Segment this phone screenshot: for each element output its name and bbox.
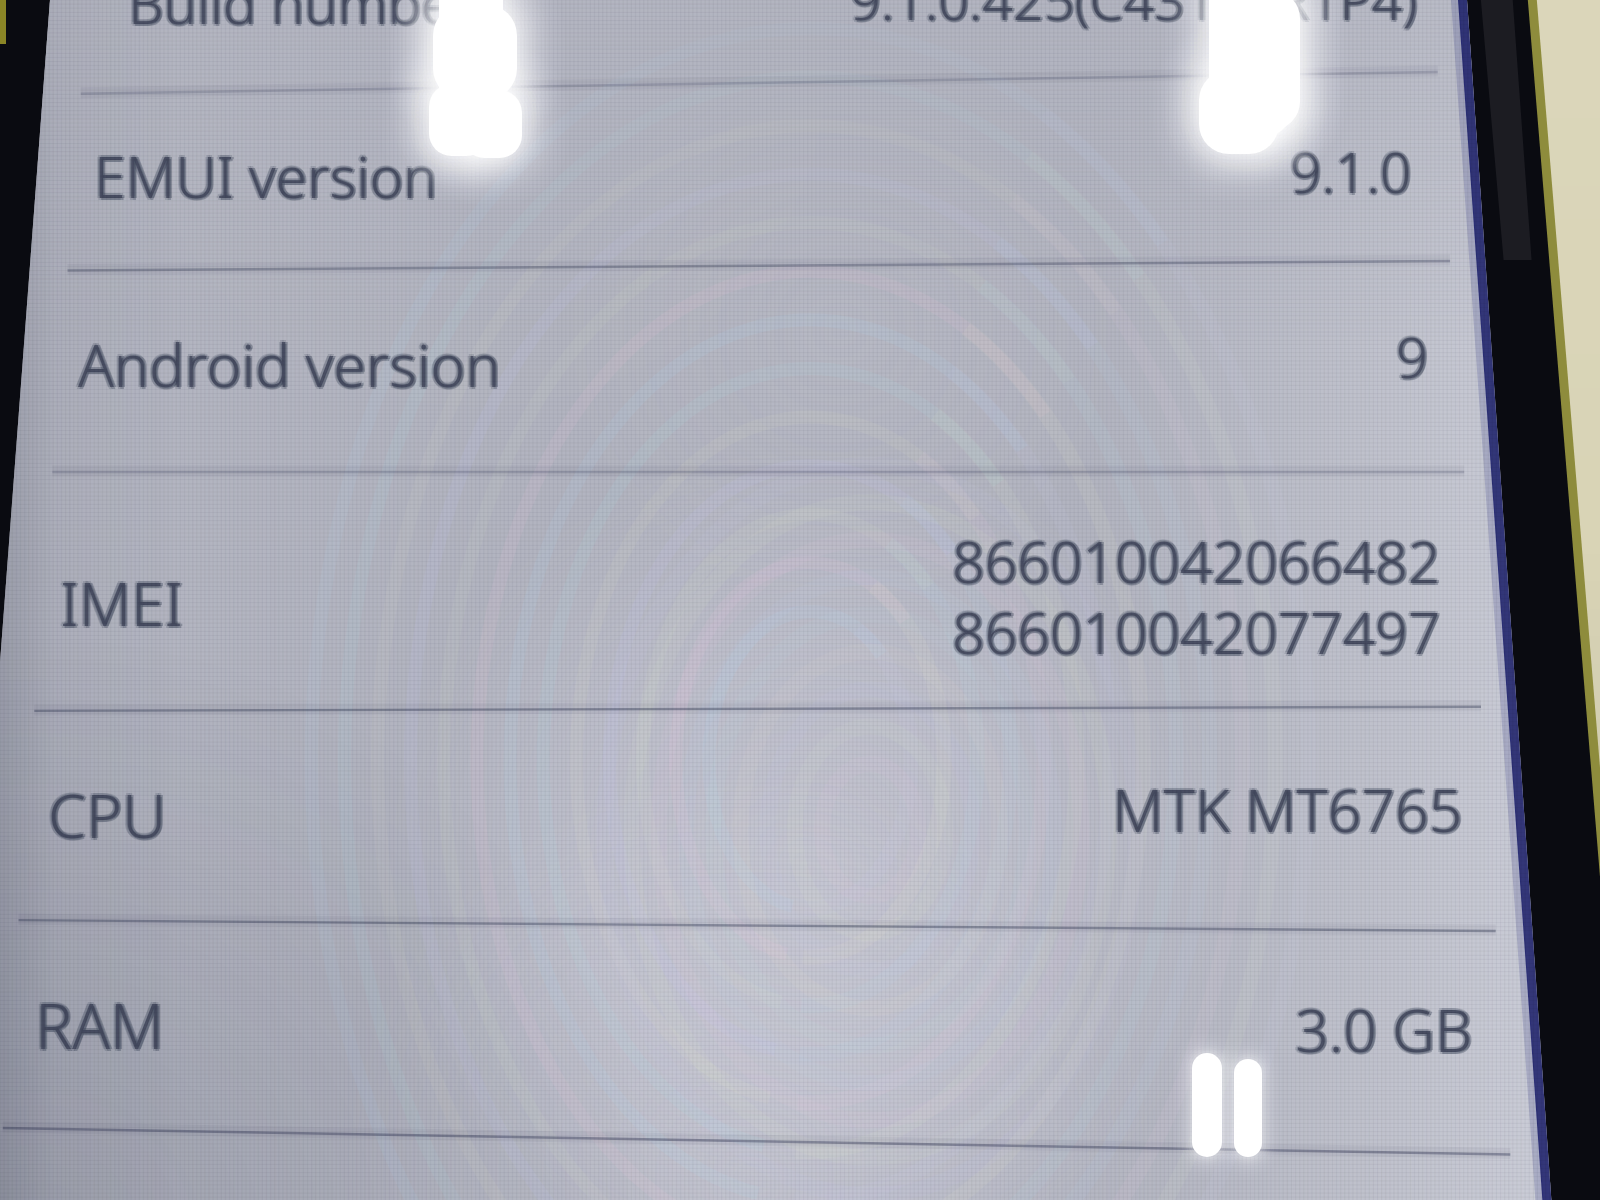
button[interactable]: About phone device information list <box>0 0 1600 1200</box>
